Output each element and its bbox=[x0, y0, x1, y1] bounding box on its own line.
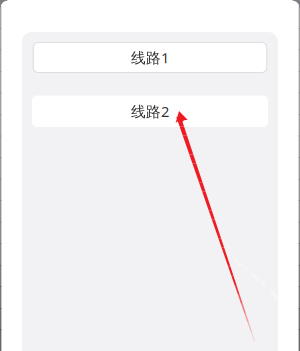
staticText: 线路1 bbox=[131, 48, 169, 67]
button[interactable]: 线路2 bbox=[32, 95, 268, 127]
button[interactable]: 线路1 bbox=[33, 42, 267, 72]
staticText: 线路2 bbox=[131, 101, 169, 121]
